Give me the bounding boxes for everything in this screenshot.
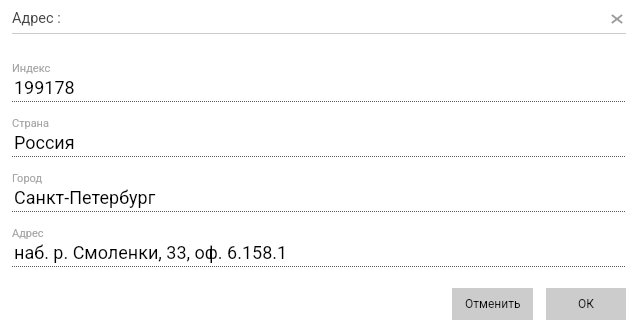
staticText: 199178 [14, 77, 75, 98]
staticText: Страна [12, 117, 49, 130]
button[interactable]: Close [605, 7, 628, 30]
staticText: ОК [578, 297, 594, 311]
staticText: Отменить [465, 297, 521, 311]
staticText: наб. р. Смоленки, 33, оф. 6.158.1 [14, 242, 288, 263]
staticText: Адрес : [12, 10, 61, 27]
button[interactable]: ОК [546, 288, 626, 320]
staticText: Россия [14, 132, 75, 153]
staticText: Город [12, 172, 43, 185]
staticText: Санкт-Петербург [14, 187, 156, 208]
button[interactable]: Отменить [452, 288, 533, 320]
staticText: Адрес [12, 227, 44, 240]
staticText: Индекс [12, 62, 51, 75]
